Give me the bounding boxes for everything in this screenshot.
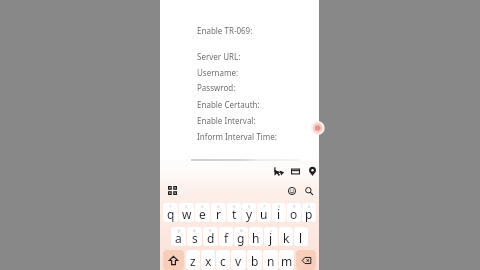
staticText: Server URL: <box>197 51 241 62</box>
staticText: + <box>270 228 273 233</box>
staticText: Enable Certauth: <box>197 99 260 110</box>
staticText: m <box>281 253 293 269</box>
button[interactable]: 4 <box>211 203 226 222</box>
button[interactable]: 6 <box>242 203 256 222</box>
staticText: 4 <box>217 204 220 209</box>
button[interactable]: _ <box>219 227 233 246</box>
button[interactable]: Payment cards <box>291 167 300 176</box>
button[interactable]: m <box>279 250 294 270</box>
staticText: w <box>182 206 192 222</box>
button[interactable]: - <box>249 227 263 246</box>
button[interactable]: 9 <box>287 203 301 222</box>
staticText: c <box>220 253 226 269</box>
staticText: 8 <box>278 204 281 209</box>
staticText: f <box>224 230 229 246</box>
staticText: v <box>235 253 242 269</box>
staticText: b <box>251 253 259 269</box>
button[interactable]: b <box>247 250 262 270</box>
staticText: p <box>305 206 313 222</box>
button[interactable]: Emoji <box>288 186 296 195</box>
button[interactable]: Text selection <box>274 167 284 176</box>
staticText: # <box>193 228 196 233</box>
staticText: j <box>269 230 273 246</box>
staticText: 2 <box>185 204 188 209</box>
button[interactable]: n <box>263 250 278 270</box>
staticText: 9 <box>293 204 296 209</box>
staticText: 7 <box>263 204 266 209</box>
staticText: l <box>299 230 303 246</box>
staticText: _ <box>225 228 227 233</box>
staticText: $ <box>209 228 212 233</box>
button[interactable]: Scroll to top <box>309 121 323 135</box>
staticText: - <box>255 228 257 233</box>
staticText: h <box>252 230 260 246</box>
staticText: & <box>240 228 243 233</box>
button[interactable]: k <box>279 227 293 246</box>
staticText: o <box>290 206 298 222</box>
button[interactable]: Search <box>305 186 313 195</box>
button[interactable]: Apps <box>168 186 177 195</box>
button[interactable]: 2 <box>179 203 194 222</box>
staticText: 6 <box>248 204 251 209</box>
staticText: x <box>205 253 212 269</box>
staticText: e <box>199 206 206 222</box>
button[interactable]: x <box>201 250 215 270</box>
staticText: Inform Interval Time: <box>197 131 277 142</box>
staticText: s <box>192 230 198 246</box>
button[interactable]: + <box>264 227 278 246</box>
staticText: y <box>246 206 253 222</box>
button[interactable]: $ <box>203 227 218 246</box>
staticText: i <box>277 206 281 222</box>
staticText: a <box>175 230 182 246</box>
staticText: d <box>207 230 215 246</box>
staticText: u <box>260 206 268 222</box>
staticText: 1 <box>169 204 172 209</box>
button[interactable]: 5 <box>227 203 241 222</box>
staticText: 0 <box>308 204 311 209</box>
staticText: @ <box>177 228 181 233</box>
staticText: Enable TR-069: <box>197 25 253 36</box>
button[interactable]: Location <box>309 167 316 176</box>
button[interactable]: l <box>294 227 308 246</box>
button[interactable]: c <box>216 250 230 270</box>
staticText: 3 <box>201 204 204 209</box>
staticText: t <box>232 206 237 222</box>
staticText: Username: <box>197 67 239 78</box>
button[interactable]: 8 <box>272 203 286 222</box>
button[interactable]: @ <box>171 227 186 246</box>
button[interactable]: z <box>186 250 200 270</box>
staticText: q <box>167 206 175 222</box>
button[interactable]: & <box>234 227 248 246</box>
staticText: n <box>267 253 275 269</box>
button[interactable]: 3 <box>195 203 210 222</box>
button[interactable]: 0 <box>302 203 316 222</box>
button[interactable]: 7 <box>257 203 271 222</box>
staticText: Enable Interval: <box>197 115 256 126</box>
button[interactable]: 1 <box>163 203 178 222</box>
button[interactable]: v <box>231 250 246 270</box>
staticText: k <box>283 230 290 246</box>
staticText: Passwrod: <box>197 82 236 93</box>
staticText: g <box>237 230 245 246</box>
button[interactable]: Backspace <box>296 250 316 270</box>
staticText: z <box>190 253 196 269</box>
staticText: 5 <box>233 204 236 209</box>
button[interactable]: # <box>187 227 202 246</box>
staticText: r <box>216 206 221 222</box>
button[interactable]: Shift <box>163 250 184 270</box>
